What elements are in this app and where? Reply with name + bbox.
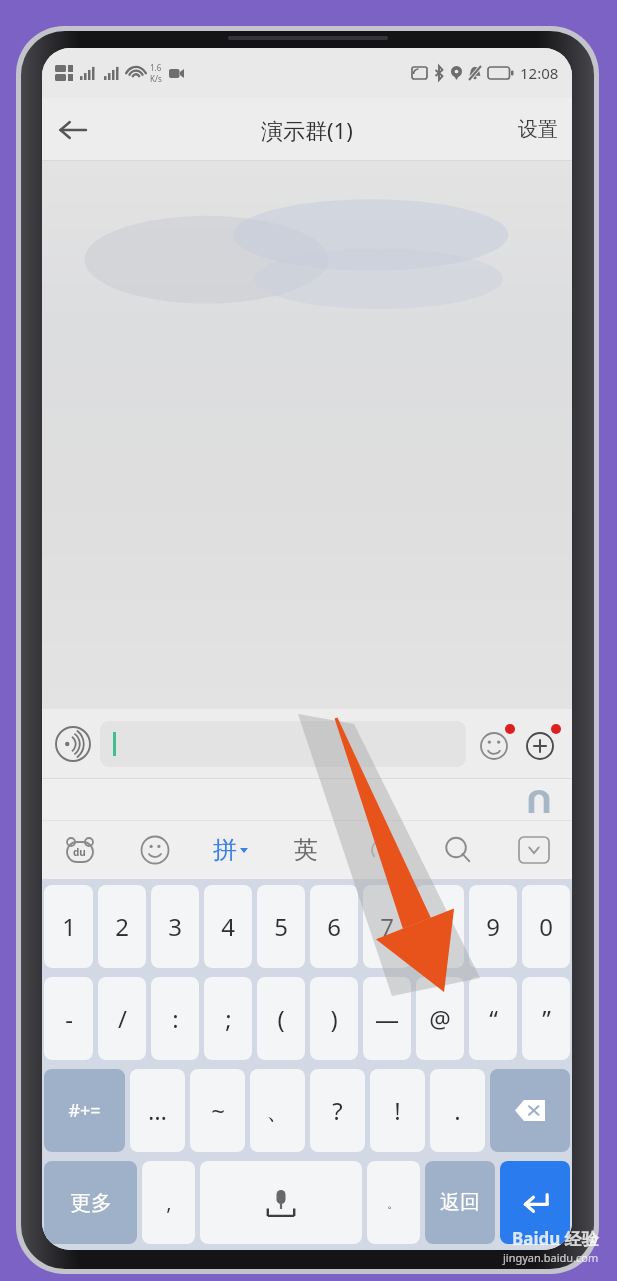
staticText: 6	[327, 910, 341, 943]
button[interactable]: 英	[268, 821, 344, 879]
staticText: -	[65, 1002, 73, 1035]
button[interactable]: /	[98, 977, 146, 1060]
button[interactable]: Back	[42, 100, 102, 160]
button[interactable]: 3	[151, 885, 199, 968]
button[interactable]: 6	[310, 885, 358, 968]
button[interactable]: Voice input	[50, 721, 96, 767]
staticText: 2	[115, 910, 129, 943]
staticText: 拼	[213, 835, 237, 865]
staticText: 返回	[440, 1190, 480, 1215]
button[interactable]: 7	[363, 885, 411, 968]
staticText: 演示群(1)	[261, 115, 353, 145]
staticText: 3	[168, 910, 182, 943]
staticText: …	[148, 1094, 167, 1127]
staticText: :	[172, 1002, 179, 1035]
button[interactable]: 2	[98, 885, 146, 968]
staticText: du	[73, 845, 86, 859]
button[interactable]: 5	[257, 885, 305, 968]
staticText: 更多	[70, 1190, 112, 1216]
button[interactable]: “	[469, 977, 517, 1060]
staticText: 设置	[518, 117, 558, 142]
button[interactable]: 4	[204, 885, 252, 968]
button[interactable]	[100, 721, 466, 767]
staticText: @	[429, 1002, 451, 1035]
button[interactable]: Add more	[518, 721, 564, 767]
button[interactable]: 更多	[44, 1161, 137, 1244]
button[interactable]: ?	[310, 1069, 365, 1152]
button[interactable]: #+=	[44, 1069, 125, 1152]
staticText: 7	[380, 910, 394, 943]
staticText: —	[375, 1002, 399, 1035]
staticText: Baidu 经验	[512, 1227, 599, 1250]
staticText: 、	[266, 1096, 290, 1126]
staticText: ~	[211, 1094, 225, 1127]
button[interactable]: —	[363, 977, 411, 1060]
staticText: 0	[539, 910, 553, 943]
button[interactable]: 拼	[192, 821, 268, 879]
button[interactable]: ,	[142, 1161, 195, 1244]
button[interactable]: Undo	[344, 821, 420, 879]
button[interactable]: Enter	[500, 1161, 570, 1244]
button[interactable]: Space	[200, 1161, 362, 1244]
button[interactable]: ;	[204, 977, 252, 1060]
button[interactable]: .	[430, 1069, 485, 1152]
button[interactable]: :	[151, 977, 199, 1060]
button[interactable]: …	[130, 1069, 185, 1152]
staticText: 1	[62, 910, 76, 943]
staticText: ;	[225, 1002, 232, 1035]
staticText: #+=	[68, 1098, 101, 1123]
staticText: (	[277, 1002, 285, 1035]
staticText: 。	[387, 1195, 400, 1211]
button[interactable]: ”	[522, 977, 570, 1060]
button[interactable]: -	[44, 977, 93, 1060]
button[interactable]: 9	[469, 885, 517, 968]
staticText: /	[118, 1002, 127, 1035]
button[interactable]: Search	[420, 821, 496, 879]
staticText: 9	[486, 910, 500, 943]
staticText: 1.6	[150, 62, 162, 73]
button[interactable]: )	[310, 977, 358, 1060]
staticText: “	[489, 1002, 498, 1035]
staticText: .	[454, 1094, 461, 1127]
button[interactable]: Emoji	[472, 721, 518, 767]
button[interactable]: 、	[250, 1069, 305, 1152]
button[interactable]: 设置	[518, 117, 558, 142]
staticText: )	[330, 1002, 338, 1035]
button[interactable]: !	[370, 1069, 425, 1152]
staticText: ?	[332, 1094, 343, 1127]
button[interactable]: 8	[416, 885, 464, 968]
button[interactable]: 1	[44, 885, 93, 968]
button[interactable]: Keyboard theme	[526, 787, 552, 813]
button[interactable]: Delete	[490, 1069, 570, 1152]
staticText: K/s	[150, 73, 162, 84]
staticText: jingyan.baidu.com	[503, 1250, 599, 1265]
button[interactable]: 0	[522, 885, 570, 968]
staticText: 5	[274, 910, 288, 943]
button[interactable]: @	[416, 977, 464, 1060]
button[interactable]: Baidu menu	[42, 821, 117, 879]
staticText: 4	[221, 910, 235, 943]
staticText: !	[394, 1094, 401, 1127]
button[interactable]: 返回	[425, 1161, 495, 1244]
button[interactable]: ~	[190, 1069, 245, 1152]
staticText: 8	[433, 910, 447, 943]
button[interactable]: (	[257, 977, 305, 1060]
staticText: 英	[294, 835, 318, 865]
button[interactable]: Emoji panel	[117, 821, 192, 879]
staticText: 12:08	[520, 63, 559, 83]
button[interactable]: Hide keyboard	[496, 821, 572, 879]
staticText: ,	[166, 1189, 172, 1216]
staticText: ”	[542, 1002, 551, 1035]
button[interactable]: 。	[367, 1161, 420, 1244]
